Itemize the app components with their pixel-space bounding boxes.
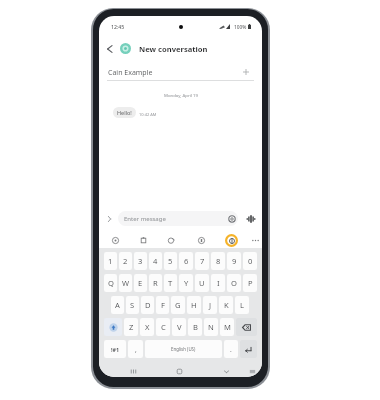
staticText: W	[122, 278, 130, 288]
button[interactable]: I	[211, 274, 225, 292]
staticText: ,	[135, 345, 137, 354]
button[interactable]: T	[164, 274, 177, 292]
button[interactable]: Y	[179, 274, 193, 292]
staticText: .	[230, 345, 232, 354]
button[interactable]: Camera	[138, 235, 148, 245]
staticText: A	[115, 300, 120, 310]
staticText: 100%	[234, 24, 247, 31]
button[interactable]: Z	[124, 318, 138, 336]
button[interactable]: J	[203, 296, 217, 314]
button[interactable]: F	[156, 296, 169, 314]
staticText: O	[231, 278, 237, 288]
button[interactable]: Stickers	[166, 235, 176, 245]
staticText: Z	[129, 322, 134, 332]
staticText: Monday, April 19	[164, 92, 198, 98]
button[interactable]: Enter	[240, 340, 257, 358]
button[interactable]: Shift	[104, 318, 122, 336]
button[interactable]: 3	[134, 252, 147, 270]
button[interactable]: English (US)	[145, 340, 222, 358]
staticText: L	[240, 300, 244, 310]
button[interactable]: ,	[128, 340, 143, 358]
staticText: Q	[108, 278, 114, 288]
button[interactable]: O	[227, 274, 241, 292]
staticText: F	[161, 300, 165, 310]
button[interactable]: Voice input	[245, 213, 256, 224]
button[interactable]: 9	[227, 252, 241, 270]
staticText: U	[199, 278, 205, 288]
button[interactable]: 8	[211, 252, 225, 270]
button[interactable]: Hello!	[113, 107, 136, 118]
staticText: I	[217, 278, 220, 288]
button[interactable]: Apps	[225, 234, 238, 247]
button[interactable]: 0	[243, 252, 257, 270]
button[interactable]: K	[219, 296, 233, 314]
staticText: S	[130, 300, 135, 310]
staticText: 4	[153, 256, 158, 266]
button[interactable]: 2	[119, 252, 132, 270]
staticText: P	[248, 278, 253, 288]
button[interactable]: 4	[149, 252, 162, 270]
button[interactable]: Enter message	[118, 211, 238, 226]
button[interactable]: Expand tools	[104, 213, 115, 224]
button[interactable]: B	[188, 318, 202, 336]
button[interactable]: Add recipient	[241, 67, 251, 77]
button[interactable]: R	[149, 274, 162, 292]
button[interactable]: G	[171, 296, 185, 314]
staticText: Cain Example	[108, 68, 153, 78]
staticText: E	[138, 278, 143, 288]
staticText: 9	[232, 256, 237, 266]
button[interactable]: Q	[104, 274, 117, 292]
staticText: 10:42 AM	[139, 112, 157, 117]
button[interactable]: More options	[250, 235, 260, 245]
button[interactable]: Gallery	[110, 235, 120, 245]
button[interactable]: M	[220, 318, 234, 336]
button[interactable]: X	[140, 318, 154, 336]
staticText: C	[161, 322, 166, 332]
staticText: D	[145, 300, 151, 310]
button[interactable]: N	[204, 318, 218, 336]
staticText: 0	[248, 256, 253, 266]
button[interactable]: Hide keyboard	[221, 366, 232, 377]
staticText: 1	[108, 256, 113, 266]
staticText: J	[209, 300, 212, 310]
staticText: 3	[138, 256, 143, 266]
staticText: Enter message	[124, 215, 166, 223]
button[interactable]: P	[243, 274, 257, 292]
button[interactable]: 7	[195, 252, 209, 270]
staticText: English (US)	[171, 346, 196, 352]
button[interactable]: Home	[174, 366, 185, 377]
button[interactable]: W	[119, 274, 132, 292]
button[interactable]: Back	[104, 43, 115, 54]
button[interactable]: 1	[104, 252, 117, 270]
staticText: 12:45	[111, 23, 125, 30]
button[interactable]: L	[235, 296, 249, 314]
button[interactable]: Recent apps	[128, 366, 139, 377]
button[interactable]: A	[111, 296, 124, 314]
button[interactable]: H	[187, 296, 201, 314]
staticText: N	[208, 322, 214, 332]
button[interactable]: U	[195, 274, 209, 292]
staticText: 8	[216, 256, 221, 266]
button[interactable]: 5	[164, 252, 177, 270]
staticText: T	[168, 278, 173, 288]
button[interactable]: E	[134, 274, 147, 292]
button[interactable]: .	[224, 340, 238, 358]
staticText: 2	[123, 256, 128, 266]
staticText: M	[224, 322, 231, 332]
button[interactable]: D	[141, 296, 154, 314]
staticText: K	[224, 300, 229, 310]
button[interactable]: 6	[179, 252, 193, 270]
button[interactable]: !#1	[104, 340, 126, 358]
button[interactable]: Backspace	[236, 318, 257, 336]
staticText: 7	[200, 256, 205, 266]
button[interactable]: Change keyboard	[247, 366, 258, 377]
button[interactable]: V	[172, 318, 186, 336]
staticText: 5	[168, 256, 173, 266]
button[interactable]: Voice memo	[196, 235, 206, 245]
staticText: X	[145, 322, 150, 332]
button[interactable]: Stickers	[227, 214, 237, 224]
staticText: New conversation	[139, 44, 208, 54]
button[interactable]: C	[156, 318, 170, 336]
button[interactable]: S	[126, 296, 139, 314]
staticText: H	[191, 300, 197, 310]
